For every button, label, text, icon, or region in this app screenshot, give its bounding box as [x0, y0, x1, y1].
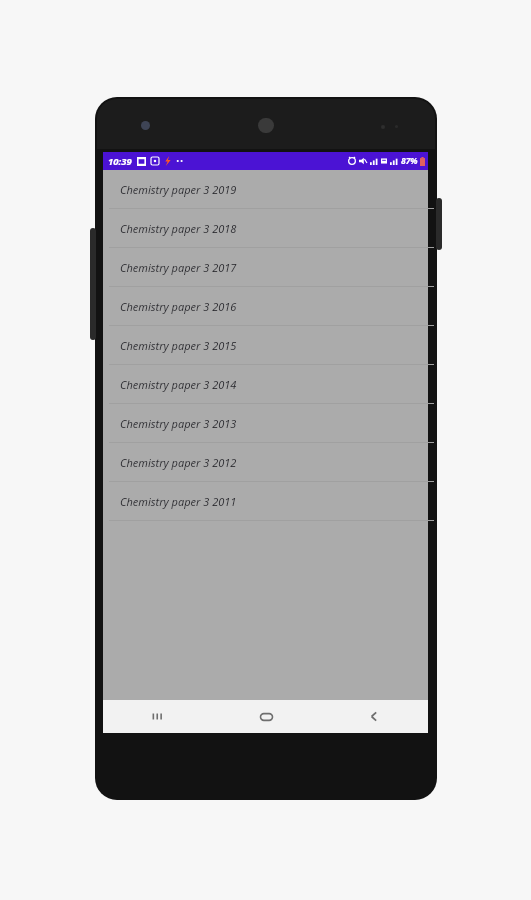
staticText: Chemistry paper 3 2012 [120, 455, 237, 470]
button[interactable]: Chemistry paper 3 2017 [103, 248, 428, 287]
button[interactable]: Chemistry paper 3 2016 [103, 287, 428, 326]
button[interactable]: Chemistry paper 3 2012 [103, 443, 428, 482]
staticText: Chemistry paper 3 2017 [120, 260, 237, 275]
staticText: 87% [401, 155, 418, 167]
staticText: Chemistry paper 3 2015 [120, 338, 237, 353]
staticText: Chemistry paper 3 2013 [120, 416, 237, 431]
button[interactable]: Recent apps [103, 700, 212, 733]
staticText: Chemistry paper 3 2011 [120, 494, 237, 509]
staticText: Chemistry paper 3 2018 [120, 221, 237, 236]
button[interactable]: Chemistry paper 3 2019 [103, 170, 428, 209]
button[interactable]: Chemistry paper 3 2011 [103, 482, 428, 521]
staticText: Chemistry paper 3 2014 [120, 377, 237, 392]
staticText: 10:39 [108, 155, 132, 168]
staticText: Chemistry paper 3 2019 [120, 182, 237, 197]
button[interactable]: Chemistry paper 3 2018 [103, 209, 428, 248]
button[interactable]: Home [212, 700, 320, 733]
button[interactable]: Chemistry paper 3 2015 [103, 326, 428, 365]
button[interactable]: Chemistry paper 3 2014 [103, 365, 428, 404]
button[interactable]: Chemistry paper 3 2013 [103, 404, 428, 443]
button[interactable]: Back [320, 700, 428, 733]
staticText: Chemistry paper 3 2016 [120, 299, 237, 314]
